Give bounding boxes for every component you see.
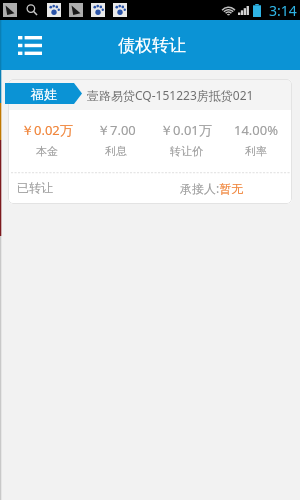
staticText: ￥7.00 — [97, 121, 136, 139]
staticText: 壹路易贷CQ-151223房抵贷021 — [87, 87, 254, 103]
staticText: ￥0.01万 — [160, 121, 212, 139]
staticText: 利息 — [105, 144, 127, 158]
button[interactable]: 壹路易贷CQ-151223房抵贷021 — [8, 79, 292, 204]
staticText: 债权转让 — [118, 35, 186, 56]
staticText: ￥0.02万 — [21, 121, 73, 139]
staticText: 14.00% — [234, 121, 279, 139]
staticText: 利率 — [245, 144, 267, 158]
staticText: 3:14 — [269, 1, 297, 20]
staticText: 转让价 — [170, 144, 203, 158]
staticText: 福娃 — [31, 86, 57, 102]
staticText: 承接人:暂无 — [180, 180, 244, 196]
staticText: 已转让 — [17, 180, 53, 195]
button[interactable]: Menu — [8, 23, 52, 67]
staticText: 本金 — [36, 144, 58, 158]
